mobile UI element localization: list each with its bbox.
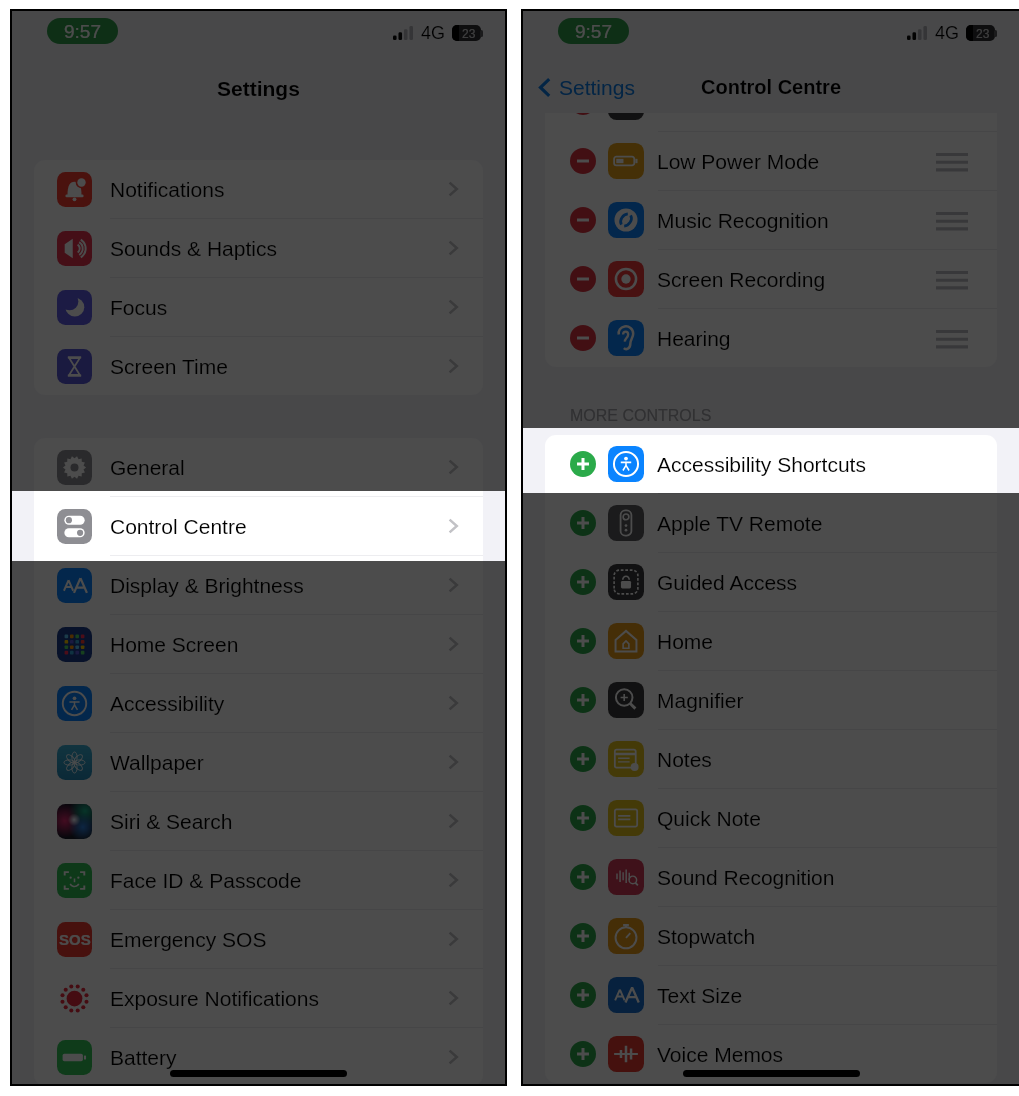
staticText: Notes — [657, 748, 712, 771]
other: Remove — [570, 325, 596, 351]
other: Add — [570, 982, 596, 1008]
staticText: Siri & Search — [110, 810, 233, 833]
staticText: Face ID & Passcode — [110, 869, 302, 892]
other: Open — [448, 931, 458, 947]
other: Remove — [570, 113, 596, 115]
button[interactable]: Display & Brightness — [34, 556, 483, 614]
button[interactable]: Remove — [545, 250, 997, 308]
button[interactable]: Settings — [539, 76, 635, 99]
button[interactable]: Focus — [34, 278, 483, 336]
staticText: 23 — [976, 27, 990, 40]
other: Open — [448, 872, 458, 888]
button[interactable]: Notifications — [34, 160, 483, 218]
other: Open — [448, 181, 458, 197]
button[interactable]: Add — [545, 789, 997, 847]
button[interactable]: Exposure Notifications — [34, 969, 483, 1027]
staticText: Exposure Notifications — [110, 987, 319, 1010]
staticText: Focus — [110, 296, 168, 319]
button[interactable]: Add — [545, 848, 997, 906]
button[interactable]: Remove — [545, 132, 997, 190]
staticText: 4G — [421, 23, 446, 43]
button[interactable]: Siri & Search — [34, 792, 483, 850]
staticText: 23 — [462, 27, 476, 40]
button[interactable]: Remove — [545, 309, 997, 367]
button[interactable]: Add — [545, 553, 997, 611]
other: Open — [448, 518, 458, 534]
staticText: Display & Brightness — [110, 574, 304, 597]
staticText: Accessibility Shortcuts — [657, 453, 866, 476]
button[interactable]: Add — [545, 966, 997, 1024]
staticText: Control Centre — [701, 76, 841, 98]
staticText: Hearing — [657, 327, 731, 350]
button[interactable]: Screen Time — [34, 337, 483, 395]
other: Open — [448, 240, 458, 256]
other: Open — [448, 813, 458, 829]
button[interactable]: Home Screen — [34, 615, 483, 673]
staticText: Settings — [559, 76, 635, 99]
staticText: SOS — [59, 931, 91, 948]
other: Add — [570, 687, 596, 713]
other: Add — [570, 805, 596, 831]
other: Remove — [570, 148, 596, 174]
other: Open — [448, 459, 458, 475]
staticText: 9:57 — [64, 21, 101, 42]
staticText: Emergency SOS — [110, 928, 267, 951]
other: Add — [570, 1041, 596, 1067]
button[interactable]: Accessibility — [34, 674, 483, 732]
other: Open — [448, 358, 458, 374]
button[interactable]: Battery — [34, 1028, 483, 1084]
other: Reorder — [936, 212, 968, 229]
button[interactable]: Face ID & Passcode — [34, 851, 483, 909]
staticText: Stopwatch — [657, 925, 756, 948]
other: Add — [570, 628, 596, 654]
staticText: Home — [657, 630, 714, 653]
staticText: 9:57 — [575, 21, 612, 42]
staticText: 4G — [935, 23, 960, 43]
staticText: Music Recognition — [657, 209, 829, 232]
staticText: Accessibility — [110, 692, 225, 715]
staticText: Guided Access — [657, 571, 798, 594]
other: Add — [570, 510, 596, 536]
staticText: Screen Recording — [657, 268, 826, 291]
button[interactable]: Remove — [545, 113, 997, 131]
staticText: Text Size — [657, 984, 743, 1007]
staticText: Wallpaper — [110, 751, 204, 774]
other: Remove — [570, 266, 596, 292]
other: Add — [570, 746, 596, 772]
other: Open — [448, 990, 458, 1006]
other: Reorder — [936, 330, 968, 347]
button[interactable]: General — [34, 438, 483, 496]
staticText: MORE CONTROLS — [570, 407, 712, 425]
other: Remove — [570, 207, 596, 233]
staticText: Voice Memos — [657, 1043, 784, 1066]
staticText: Battery — [110, 1046, 177, 1069]
other: Open — [448, 636, 458, 652]
button[interactable]: Add — [545, 671, 997, 729]
staticText: Sounds & Haptics — [110, 237, 277, 260]
other: Add — [570, 451, 596, 477]
button[interactable]: Control Centre — [34, 497, 483, 555]
button[interactable]: Add — [545, 907, 997, 965]
staticText: Control Centre — [110, 515, 247, 538]
staticText: Apple TV Remote — [657, 512, 823, 535]
button[interactable]: Add — [545, 730, 997, 788]
other: Open — [448, 577, 458, 593]
staticText: Home Screen — [110, 633, 239, 656]
other: Add — [570, 923, 596, 949]
button[interactable]: Add — [545, 612, 997, 670]
other: Open — [448, 299, 458, 315]
button[interactable]: Sounds & Haptics — [34, 219, 483, 277]
other: Reorder — [936, 153, 968, 170]
staticText: Screen Time — [110, 355, 228, 378]
other: Reorder — [936, 271, 968, 288]
staticText: General — [110, 456, 185, 479]
other: Add — [570, 864, 596, 890]
staticText: Low Power Mode — [657, 150, 820, 173]
button[interactable]: Add — [545, 1025, 997, 1083]
button[interactable]: Remove — [545, 191, 997, 249]
button[interactable]: SOS — [34, 910, 483, 968]
button[interactable]: Add — [545, 435, 997, 493]
button[interactable]: Wallpaper — [34, 733, 483, 791]
other: Open — [448, 754, 458, 770]
button[interactable]: Add — [545, 494, 997, 552]
